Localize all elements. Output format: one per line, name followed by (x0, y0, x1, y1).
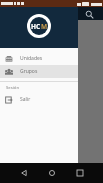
button[interactable]: Back (17, 166, 31, 180)
button[interactable]: Salir (0, 93, 78, 106)
staticText: Salir (20, 96, 31, 103)
button[interactable]: Home (45, 166, 59, 180)
button[interactable]: Recent apps (73, 166, 87, 180)
staticText: Grupos (20, 68, 38, 75)
staticText: Unidades (20, 55, 43, 62)
staticText: HC (31, 22, 41, 31)
staticText: M (41, 22, 48, 31)
staticText: Sesión (6, 85, 20, 91)
button[interactable]: Search (85, 10, 94, 19)
button[interactable]: Grupos (0, 65, 78, 78)
button[interactable]: Unidades (0, 52, 78, 65)
